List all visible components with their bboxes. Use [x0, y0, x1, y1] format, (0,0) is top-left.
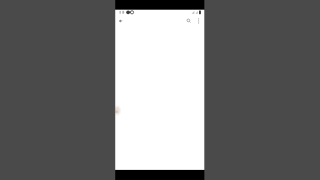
button[interactable]: Navigate up — [116, 16, 125, 25]
button[interactable]: Search — [184, 16, 193, 25]
button[interactable]: More options — [194, 16, 203, 25]
